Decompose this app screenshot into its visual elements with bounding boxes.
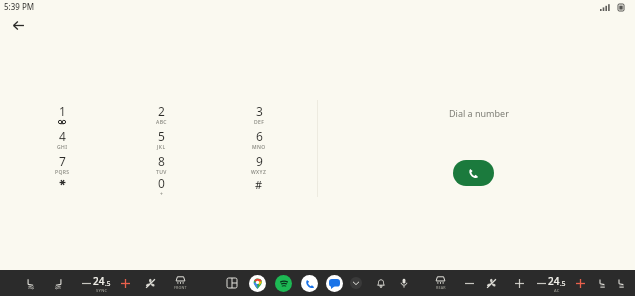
button[interactable]: 3: [226, 103, 292, 128]
button[interactable]: 1: [29, 103, 95, 128]
staticText: PQRS: [55, 169, 70, 176]
button[interactable]: Google Maps: [246, 270, 268, 296]
staticText: 5: [158, 128, 165, 144]
button[interactable]: Decrease temperature: [78, 270, 94, 296]
staticText: 2: [158, 103, 165, 119]
staticText: AC: [554, 288, 560, 293]
button[interactable]: Increase: [511, 270, 527, 296]
button[interactable]: Decrease temperature: [461, 270, 477, 296]
button[interactable]: Expand: [347, 270, 365, 296]
button[interactable]: Fan off: [140, 270, 160, 296]
button[interactable]: Call: [453, 160, 494, 186]
button[interactable]: 7: [29, 153, 95, 178]
staticText: MNO: [252, 144, 266, 151]
staticText: Dial a number: [449, 107, 509, 119]
staticText: JKL: [157, 144, 166, 151]
button[interactable]: 5: [128, 128, 194, 153]
button[interactable]: Seat heater: [593, 270, 610, 296]
button[interactable]: Fan off: [481, 270, 501, 296]
staticText: GHI: [57, 144, 68, 151]
staticText: #: [255, 177, 263, 192]
button[interactable]: Phone: [298, 270, 320, 296]
staticText: FRONT: [174, 285, 187, 290]
button[interactable]: 4: [29, 128, 95, 153]
staticText: +: [160, 191, 164, 198]
staticText: .5: [105, 279, 111, 288]
staticText: 7: [59, 153, 66, 169]
button[interactable]: Decrease temperature: [533, 270, 549, 296]
button[interactable]: #: [226, 175, 292, 200]
staticText: 5:39 PM: [4, 1, 35, 12]
button[interactable]: Increase temperature: [117, 270, 133, 296]
button[interactable]: Seat heater: [612, 270, 629, 296]
staticText: 4: [59, 128, 66, 144]
button[interactable]: Driver seat heater: [20, 270, 40, 296]
staticText: 3: [256, 103, 263, 119]
button[interactable]: 24: [87, 270, 117, 296]
staticText: REAR: [436, 285, 446, 290]
button[interactable]: 2: [128, 103, 194, 128]
button[interactable]: Notifications: [371, 270, 391, 296]
button[interactable]: App grid: [222, 270, 242, 296]
button[interactable]: REAR defroster: [427, 270, 453, 296]
button[interactable]: Increase temperature: [572, 270, 588, 296]
button[interactable]: 0: [128, 175, 194, 200]
button[interactable]: 24: [542, 270, 572, 296]
button[interactable]: Passenger seat heater: [48, 270, 68, 296]
button[interactable]: [29, 175, 95, 200]
staticText: TUV: [156, 169, 167, 176]
staticText: 8: [158, 153, 165, 169]
staticText: 6: [256, 128, 263, 144]
staticText: 0: [158, 175, 165, 191]
staticText: DEF: [254, 119, 265, 126]
button[interactable]: 9: [226, 153, 292, 178]
staticText: SYNC: [96, 288, 108, 293]
staticText: 24: [93, 274, 105, 288]
button[interactable]: 8: [128, 153, 194, 178]
staticText: 24: [548, 274, 560, 288]
button[interactable]: Voice assistant: [394, 270, 414, 296]
staticText: 9: [256, 153, 263, 169]
button[interactable]: 6: [226, 128, 292, 153]
button[interactable]: Spotify: [272, 270, 294, 296]
button[interactable]: Messages: [323, 270, 345, 296]
button[interactable]: Back: [6, 13, 30, 37]
staticText: .5: [560, 279, 566, 288]
button[interactable]: FRONT defroster: [167, 270, 193, 296]
staticText: 1: [59, 103, 66, 119]
staticText: ABC: [156, 119, 167, 126]
staticText: WXYZ: [251, 169, 267, 176]
